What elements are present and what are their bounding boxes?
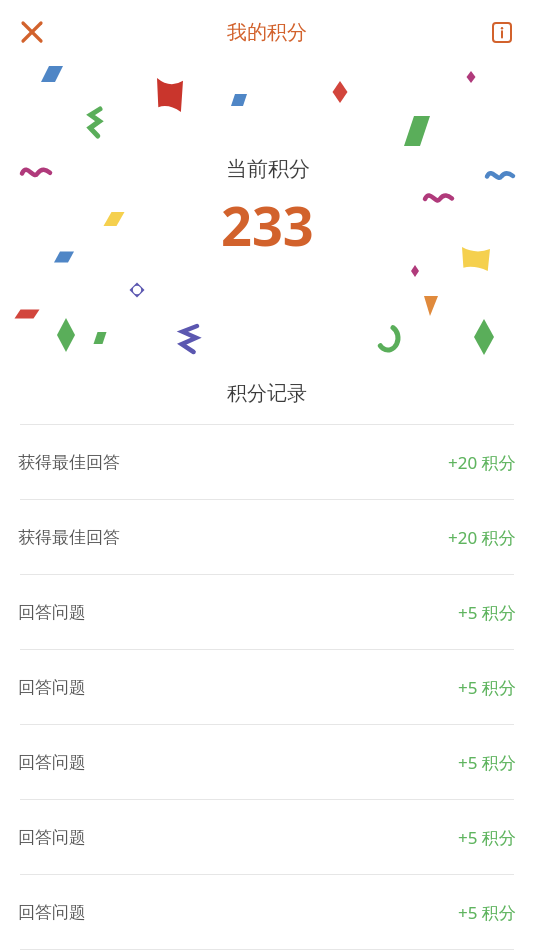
button[interactable]: 回答问题 (0, 650, 534, 725)
staticText: 回答问题 (18, 602, 86, 623)
staticText: 我的积分 (227, 20, 307, 45)
staticText: +5 积分 (458, 751, 516, 774)
staticText: 回答问题 (18, 827, 86, 848)
button[interactable]: 获得最佳回答 (0, 500, 534, 575)
staticText: +20 积分 (448, 526, 516, 549)
staticText: 回答问题 (18, 752, 86, 773)
button[interactable]: 回答问题 (0, 725, 534, 800)
staticText: 233 (221, 188, 314, 262)
staticText: 回答问题 (18, 677, 86, 698)
staticText: 获得最佳回答 (18, 527, 120, 548)
staticText: +5 积分 (458, 601, 516, 624)
staticText: 当前积分 (226, 156, 310, 182)
staticText: +5 积分 (458, 826, 516, 849)
staticText: +5 积分 (458, 901, 516, 924)
staticText: +5 积分 (458, 676, 516, 699)
button[interactable]: 回答问题 (0, 575, 534, 650)
button[interactable]: 回答问题 (0, 875, 534, 950)
staticText: 回答问题 (18, 902, 86, 923)
staticText: 获得最佳回答 (18, 452, 120, 473)
staticText: +20 积分 (448, 451, 516, 474)
button[interactable]: 获得最佳回答 (0, 425, 534, 500)
staticText: 积分记录 (227, 381, 307, 406)
button[interactable]: Close (8, 8, 56, 56)
button[interactable]: 回答问题 (0, 800, 534, 875)
button[interactable]: Info (480, 10, 524, 54)
